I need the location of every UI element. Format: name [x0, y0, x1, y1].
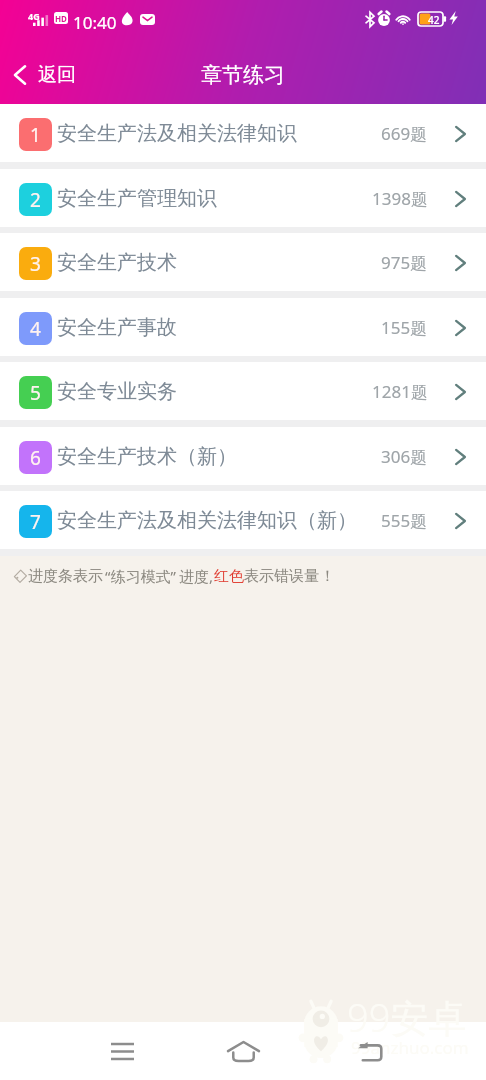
- staticText: 安全生产技术: [57, 250, 177, 275]
- staticText: 安全生产技术（新）: [57, 444, 237, 469]
- staticText: “练习模式”: [105, 566, 176, 586]
- staticText: 安全专业实务: [57, 379, 177, 404]
- staticText: 669题: [381, 122, 428, 145]
- staticText: 1398题: [372, 187, 428, 210]
- staticText: 返回: [38, 63, 76, 87]
- staticText: 10:40: [73, 11, 117, 34]
- staticText: 155题: [381, 316, 428, 339]
- button[interactable]: 4: [0, 298, 486, 356]
- button[interactable]: 2: [0, 169, 486, 227]
- staticText: 进度,: [179, 566, 214, 586]
- staticText: 7: [30, 509, 41, 535]
- staticText: 2: [30, 187, 41, 213]
- staticText: 3: [30, 251, 41, 277]
- button[interactable]: Back: [340, 1022, 400, 1080]
- staticText: 99anzhuo.com: [351, 1036, 469, 1059]
- staticText: 章节练习: [201, 62, 285, 88]
- staticText: 安全生产事故: [57, 315, 177, 340]
- staticText: 1: [30, 122, 41, 148]
- staticText: 安全生产法及相关法律知识: [57, 121, 297, 146]
- staticText: 1281题: [372, 380, 428, 403]
- button[interactable]: 7: [0, 491, 486, 549]
- staticText: 表示错误量: [244, 567, 319, 586]
- staticText: 4G: [28, 10, 40, 22]
- staticText: 5: [30, 380, 41, 406]
- staticText: 6: [30, 445, 41, 471]
- staticText: 306题: [381, 445, 428, 468]
- staticText: 42: [428, 13, 440, 27]
- staticText: 进度条表示: [28, 567, 103, 586]
- staticText: 555题: [381, 509, 428, 532]
- staticText: 975题: [381, 251, 428, 274]
- button[interactable]: Recents: [92, 1022, 152, 1080]
- staticText: ！: [320, 567, 335, 586]
- button[interactable]: Home: [213, 1022, 273, 1080]
- button[interactable]: 返回: [0, 53, 90, 97]
- button[interactable]: 3: [0, 233, 486, 291]
- staticText: 安全生产管理知识: [57, 186, 217, 211]
- staticText: 4: [30, 316, 41, 342]
- staticText: 安全生产法及相关法律知识（新）: [57, 508, 357, 533]
- button[interactable]: 6: [0, 427, 486, 485]
- button[interactable]: 1: [0, 104, 486, 162]
- staticText: 99安卓: [347, 991, 467, 1043]
- button[interactable]: 5: [0, 362, 486, 420]
- staticText: HD: [55, 13, 67, 24]
- staticText: 红色: [214, 567, 244, 586]
